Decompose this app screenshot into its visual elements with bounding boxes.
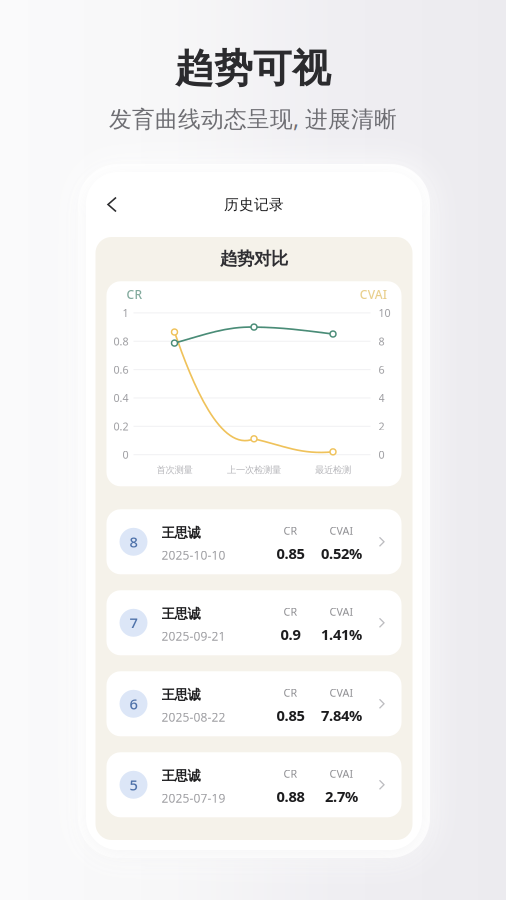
staticText: 6 xyxy=(129,694,137,714)
staticText: CR xyxy=(126,286,142,302)
staticText: 趋势可视 xyxy=(175,45,331,92)
staticText: 0 xyxy=(378,448,384,462)
staticText: 8 xyxy=(378,334,384,348)
button[interactable]: 5 xyxy=(106,752,401,817)
staticText: 最近检测 xyxy=(315,464,351,476)
staticText: 发育曲线动态呈现, 进展清晰 xyxy=(109,103,397,134)
staticText: 2025-09-21 xyxy=(161,628,225,644)
staticText: CR xyxy=(283,604,297,619)
staticText: 2 xyxy=(378,419,384,433)
staticText: 1 xyxy=(122,306,128,320)
staticText: 0 xyxy=(122,448,128,462)
staticText: CR xyxy=(283,685,297,700)
staticText: 2025-07-19 xyxy=(161,790,225,806)
staticText: CVAI xyxy=(329,604,353,619)
staticText: 趋势对比 xyxy=(220,248,288,269)
button[interactable]: 7 xyxy=(106,590,401,655)
staticText: 5 xyxy=(129,775,137,795)
staticText: 王思诚 xyxy=(161,768,200,784)
staticText: 0.85 xyxy=(276,706,304,725)
staticText: 2025-08-22 xyxy=(161,709,225,725)
staticText: 4 xyxy=(378,391,384,405)
staticText: 上一次检测量 xyxy=(227,464,281,476)
staticText: 王思诚 xyxy=(161,525,200,541)
staticText: 0.9 xyxy=(280,625,300,644)
staticText: 0.6 xyxy=(113,362,128,377)
staticText: 7.84% xyxy=(321,706,362,725)
staticText: 10 xyxy=(378,306,390,320)
staticText: 2025-10-10 xyxy=(161,547,225,563)
staticText: 历史记录 xyxy=(224,195,284,213)
staticText: 0.85 xyxy=(276,544,304,563)
staticText: 0.4 xyxy=(113,391,128,405)
staticText: CVAI xyxy=(329,766,353,781)
staticText: 首次测量 xyxy=(156,464,192,476)
button[interactable]: 返回 xyxy=(86,182,132,226)
button[interactable]: 6 xyxy=(106,671,401,736)
staticText: CVAI xyxy=(329,523,353,538)
button[interactable]: 8 xyxy=(106,509,401,574)
staticText: 2.7% xyxy=(325,787,358,806)
staticText: 8 xyxy=(129,532,137,552)
staticText: 0.88 xyxy=(276,787,304,806)
staticText: 0.52% xyxy=(321,544,362,563)
staticText: CVAI xyxy=(329,685,353,700)
staticText: 7 xyxy=(129,613,137,633)
staticText: CR xyxy=(283,766,297,781)
staticText: 6 xyxy=(378,362,384,377)
staticText: 1.41% xyxy=(321,625,362,644)
staticText: 王思诚 xyxy=(161,606,200,622)
staticText: 0.8 xyxy=(113,334,128,348)
staticText: CR xyxy=(283,523,297,538)
staticText: 王思诚 xyxy=(161,687,200,703)
staticText: 0.2 xyxy=(113,419,128,433)
staticText: CVAI xyxy=(360,286,387,302)
